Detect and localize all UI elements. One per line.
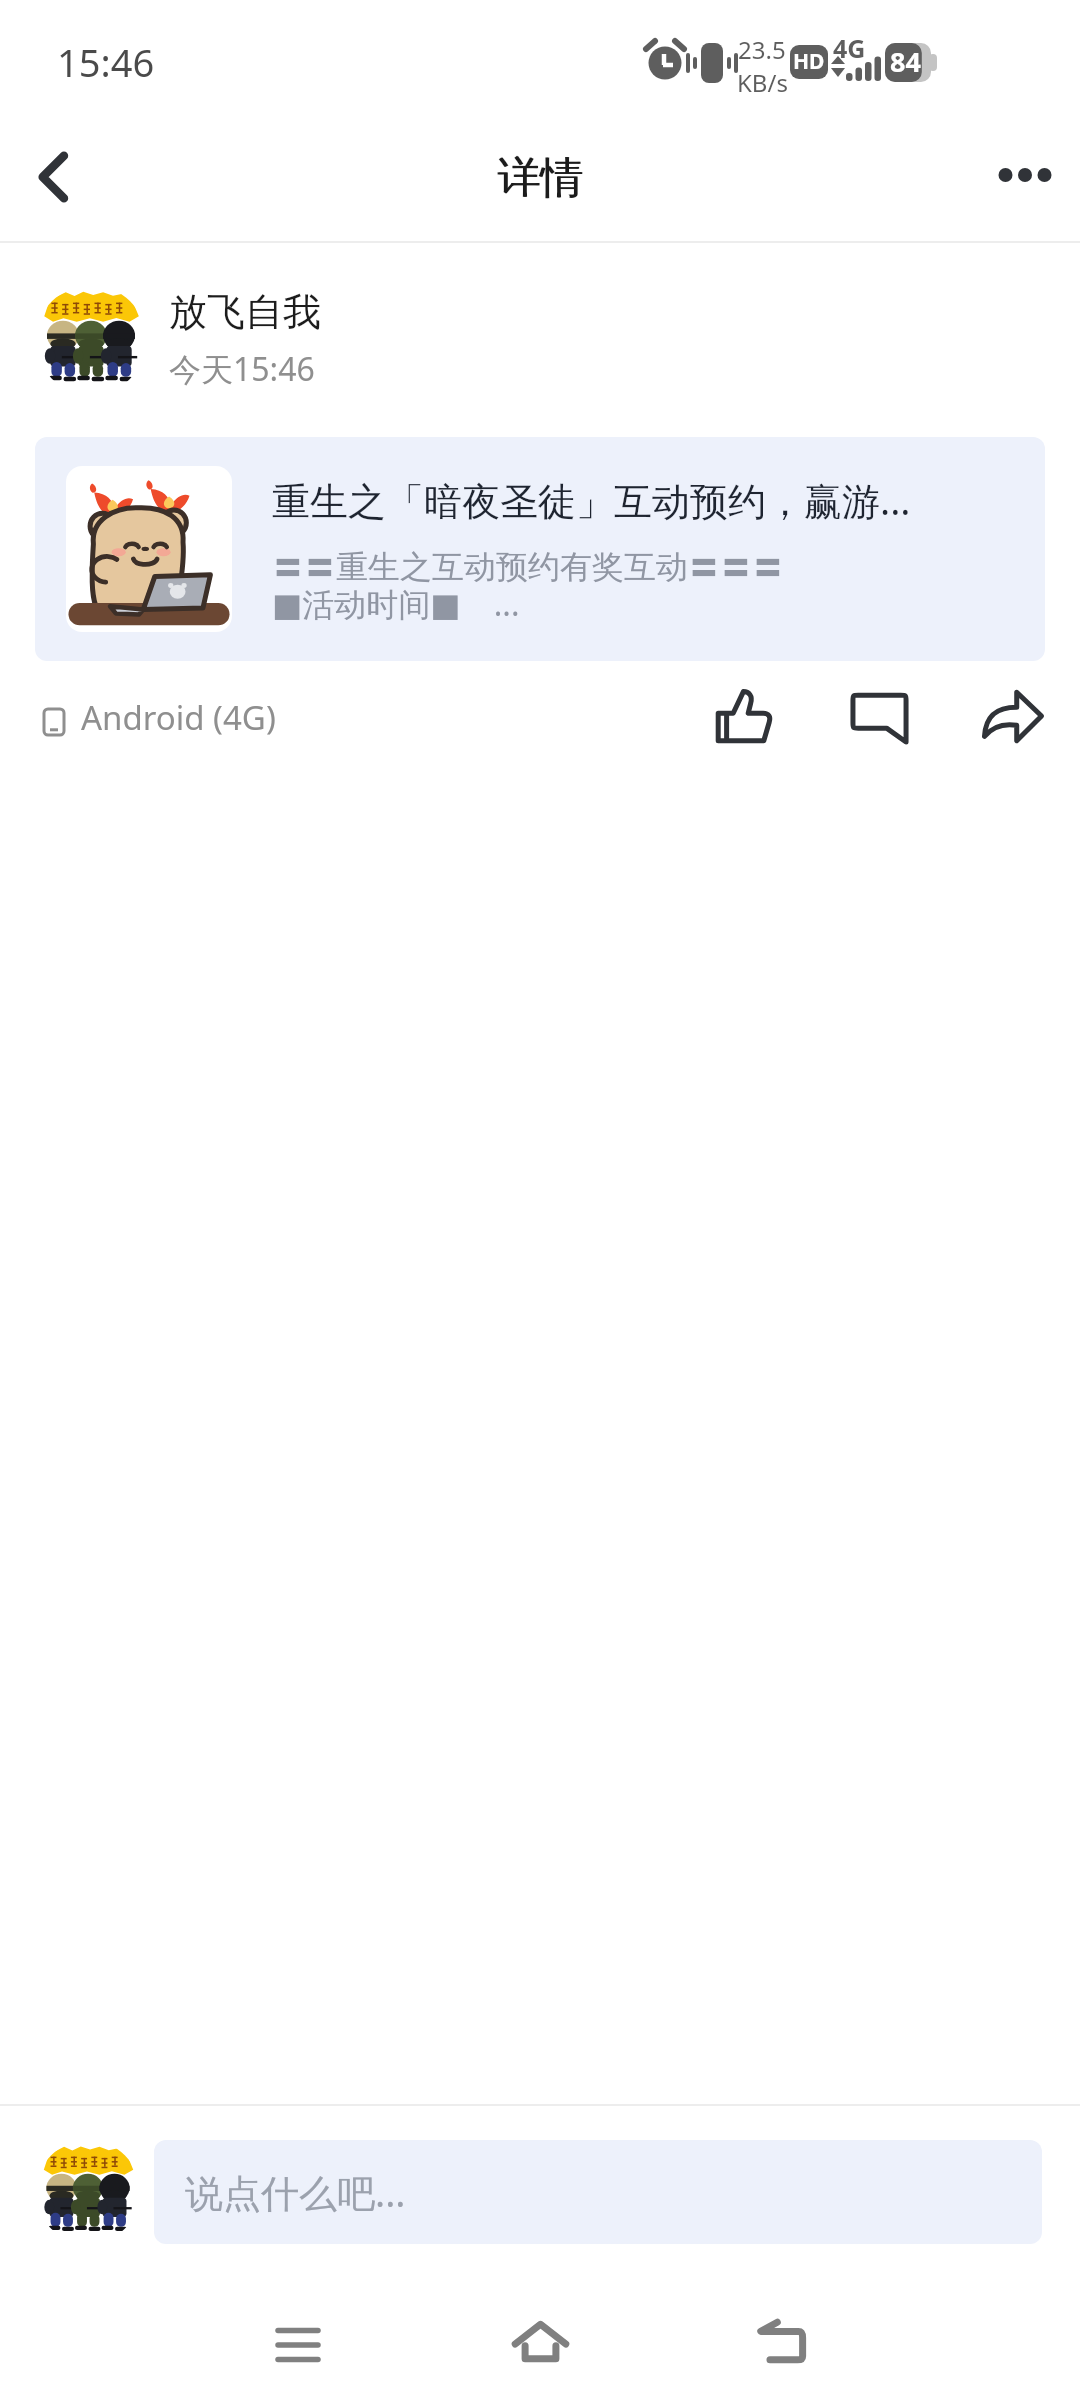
staticText: KB/s — [737, 66, 788, 99]
staticText: 详情 — [497, 151, 583, 205]
staticText: 放飞自我 — [169, 288, 321, 336]
staticText: 84 — [890, 43, 921, 80]
button[interactable]: Home — [465, 2284, 615, 2408]
button[interactable]: Like — [685, 665, 803, 775]
button[interactable]: Share — [953, 665, 1071, 775]
staticText: 今天15:46 — [169, 347, 315, 391]
button[interactable]: 放飞自我 — [169, 288, 321, 391]
staticText: 详情 — [498, 151, 584, 205]
staticText: Android (4G) — [81, 695, 276, 740]
button[interactable]: My avatar — [36, 2140, 140, 2244]
staticText: 23.5 — [738, 33, 786, 66]
button[interactable]: Back — [705, 2284, 855, 2408]
button[interactable]: Comment — [818, 662, 936, 778]
staticText: 4G — [833, 31, 866, 65]
button[interactable]: User avatar — [36, 285, 146, 395]
button[interactable]: Back — [0, 118, 120, 240]
staticText: 〓〓重生之互动预约有奖互动〓〓〓 ■活动时间■ ... — [272, 547, 784, 625]
staticText: 重生之「暗夜圣徒」互动预约，赢游... — [272, 474, 911, 526]
button[interactable]: More options — [960, 118, 1080, 240]
button[interactable]: 重生之「暗夜圣徒」互动预约，赢游... — [35, 437, 1045, 661]
staticText: 说点什么吧... — [185, 2166, 406, 2218]
button[interactable]: Recent apps — [225, 2284, 375, 2408]
staticText: 15:46 — [57, 36, 155, 88]
button[interactable]: 说点什么吧... — [154, 2140, 1042, 2244]
staticText: HD — [793, 47, 825, 76]
